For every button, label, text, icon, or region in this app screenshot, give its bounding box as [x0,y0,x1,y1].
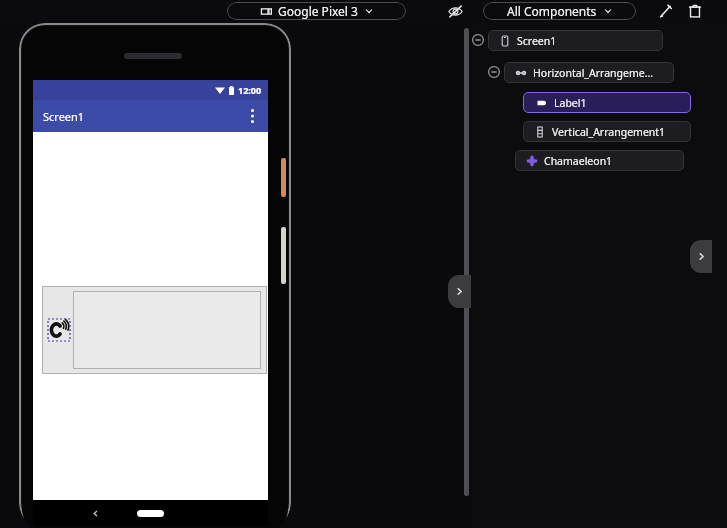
button[interactable]: Label1 [42,286,267,374]
button[interactable]: Chamaeleon1 [515,150,684,171]
button[interactable]: Label1 [523,92,691,113]
button[interactable]: Google Pixel 3 [227,2,406,20]
button[interactable]: Label1 [48,319,70,341]
staticText: 12:00 [238,84,262,96]
button[interactable]: Vertical_Arrangement1 [523,121,691,142]
button[interactable]: Collapse Horizontal_Arrangeme... [487,65,501,79]
button[interactable]: Expand viewer panel [448,275,471,308]
button[interactable]: Screen1 [488,30,663,51]
button[interactable]: Hide preview [446,2,464,20]
button[interactable]: Delete component [686,2,704,20]
button[interactable] [73,291,261,369]
staticText: All Components [507,3,597,19]
staticText: Screen1 [43,109,85,124]
button[interactable]: Expand properties panel [690,240,712,273]
staticText: Screen1 [517,34,557,48]
button[interactable]: Back [85,503,105,523]
button[interactable]: Horizontal_Arrangeme... [504,62,674,83]
button[interactable]: Collapse Screen1 [471,33,485,47]
button[interactable]: More options [241,105,263,127]
staticText: Label1 [554,96,587,110]
button[interactable]: Rename component [657,2,675,20]
staticText: Chamaeleon1 [544,154,613,168]
staticText: Horizontal_Arrangeme... [533,66,654,80]
button[interactable]: All Components [483,2,636,20]
staticText: Google Pixel 3 [278,3,358,19]
staticText: Vertical_Arrangement1 [552,125,666,139]
button[interactable]: Home [137,510,164,517]
